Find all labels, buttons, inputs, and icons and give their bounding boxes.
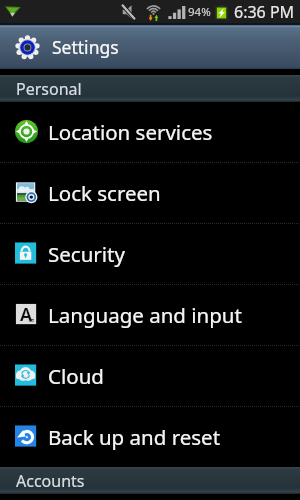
staticText: Accounts: [16, 470, 85, 492]
staticText: Language and input: [48, 301, 242, 329]
staticText: Personal: [16, 78, 82, 100]
button[interactable]: Back up and reset: [0, 407, 300, 467]
staticText: A: [20, 302, 33, 325]
staticText: 94%: [188, 4, 211, 20]
button[interactable]: Settings: [0, 23, 300, 69]
button[interactable]: Cloud: [0, 346, 300, 406]
button[interactable]: Lock screen: [0, 163, 300, 223]
staticText: Settings: [52, 35, 119, 59]
button[interactable]: Location services: [0, 102, 300, 162]
staticText: Cloud: [48, 362, 104, 390]
staticText: Security: [48, 240, 125, 268]
staticText: Location services: [48, 118, 213, 146]
button[interactable]: A: [0, 285, 300, 345]
staticText: Back up and reset: [48, 423, 221, 451]
staticText: 6:36 PM: [234, 1, 295, 23]
button[interactable]: Security: [0, 224, 300, 284]
staticText: Lock screen: [48, 179, 161, 207]
